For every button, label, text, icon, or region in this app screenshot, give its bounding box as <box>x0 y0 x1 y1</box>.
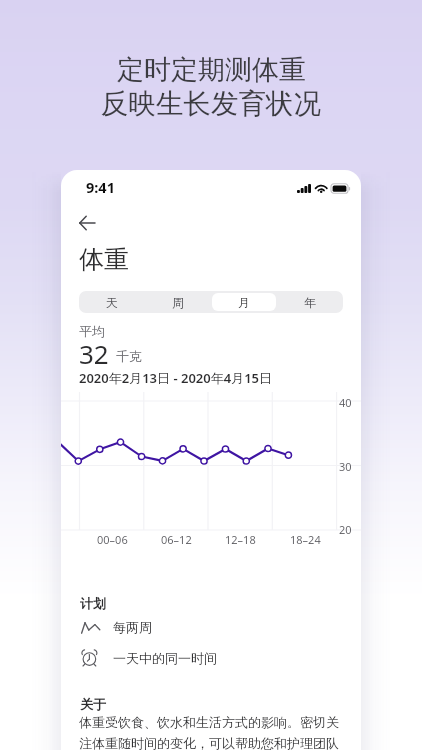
staticText: 平均 <box>79 323 105 339</box>
staticText: 周 <box>172 295 184 310</box>
button[interactable]: Back <box>68 204 106 242</box>
button[interactable]: 年 <box>278 293 342 311</box>
button[interactable]: 天 <box>80 293 144 311</box>
staticText: 00–06 <box>97 532 128 547</box>
staticText: 9:41 <box>86 177 115 197</box>
staticText: 年 <box>304 295 316 310</box>
staticText: 2020年2月13日 - 2020年4月15日 <box>79 369 273 387</box>
staticText: 12–18 <box>225 532 256 547</box>
staticText: 一天中的同一时间 <box>113 650 217 666</box>
staticText: 18–24 <box>290 532 321 547</box>
staticText: 天 <box>106 295 118 310</box>
button[interactable]: 一天中的同一时间 <box>61 647 361 669</box>
staticText: 关于 <box>80 696 106 712</box>
staticText: 20 <box>339 522 352 537</box>
staticText: 月 <box>238 295 250 310</box>
staticText: 40 <box>339 395 352 410</box>
staticText: 30 <box>339 459 352 474</box>
staticText: 体重受饮食、饮水和生活方式的影响。密切关注体重随时间的变化，可以帮助您和护理团队 <box>79 714 342 750</box>
button[interactable]: 月 <box>212 293 276 311</box>
button[interactable]: 周 <box>146 293 210 311</box>
button[interactable]: 每两周 <box>61 616 361 638</box>
staticText: 每两周 <box>113 619 152 635</box>
staticText: 反映生长发育状况 <box>101 87 321 122</box>
staticText: 计划 <box>80 595 106 611</box>
staticText: 体重 <box>79 244 129 275</box>
staticText: 32 <box>79 336 109 371</box>
staticText: 千克 <box>116 348 142 364</box>
staticText: 定时定期测体重 <box>117 53 306 87</box>
staticText: 06–12 <box>161 532 192 547</box>
